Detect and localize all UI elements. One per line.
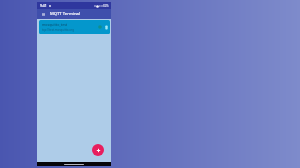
button[interactable]: Connect (97, 24, 103, 30)
staticText: 9:41 (40, 3, 47, 8)
staticText: 82% (103, 4, 109, 8)
button[interactable]: Delete connection (103, 24, 109, 30)
button[interactable]: Open navigation menu (39, 10, 47, 18)
staticText: MQTT Terminal (50, 11, 80, 17)
button[interactable]: mosquitto_test (39, 20, 110, 34)
staticText: tcp://test.mosquitto.org (42, 28, 74, 32)
button[interactable]: Add connection (92, 144, 104, 156)
staticText: mosquitto_test (42, 22, 68, 27)
